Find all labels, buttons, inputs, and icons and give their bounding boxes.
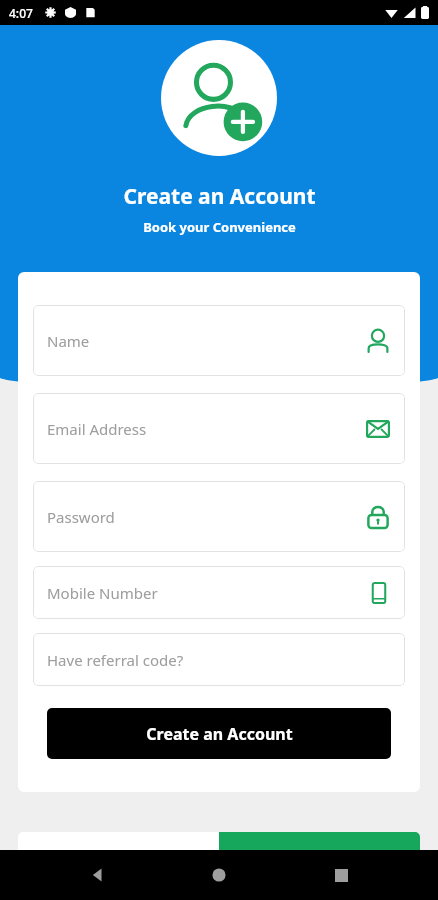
staticText: 4:07 bbox=[9, 5, 33, 21]
button[interactable]: Have referral code? bbox=[33, 633, 405, 686]
staticText: Have referral code? bbox=[47, 650, 391, 670]
other: Email Address bbox=[365, 416, 391, 442]
button[interactable]: Email Address bbox=[33, 393, 405, 464]
staticText: Name bbox=[47, 331, 365, 351]
staticText: Email Address bbox=[47, 419, 365, 439]
button[interactable]: Recent apps bbox=[317, 851, 365, 899]
button[interactable]: Create an Account bbox=[47, 708, 391, 759]
button[interactable]: Back bbox=[74, 851, 122, 899]
other: Password bbox=[365, 504, 391, 530]
button[interactable]: Password bbox=[33, 481, 405, 552]
button[interactable]: Home bbox=[195, 851, 243, 899]
button[interactable] bbox=[18, 832, 420, 862]
staticText: Book your Convenience bbox=[143, 218, 296, 236]
staticText: Password bbox=[47, 507, 365, 527]
other: Name bbox=[365, 328, 391, 354]
other: Mobile Number bbox=[367, 581, 391, 605]
other: Account logo bbox=[161, 40, 277, 156]
staticText: Create an Account bbox=[146, 723, 293, 745]
staticText: Create an Account bbox=[123, 182, 316, 211]
button[interactable]: Mobile Number bbox=[33, 566, 405, 619]
staticText: Mobile Number bbox=[47, 583, 367, 603]
button[interactable]: Name bbox=[33, 305, 405, 376]
